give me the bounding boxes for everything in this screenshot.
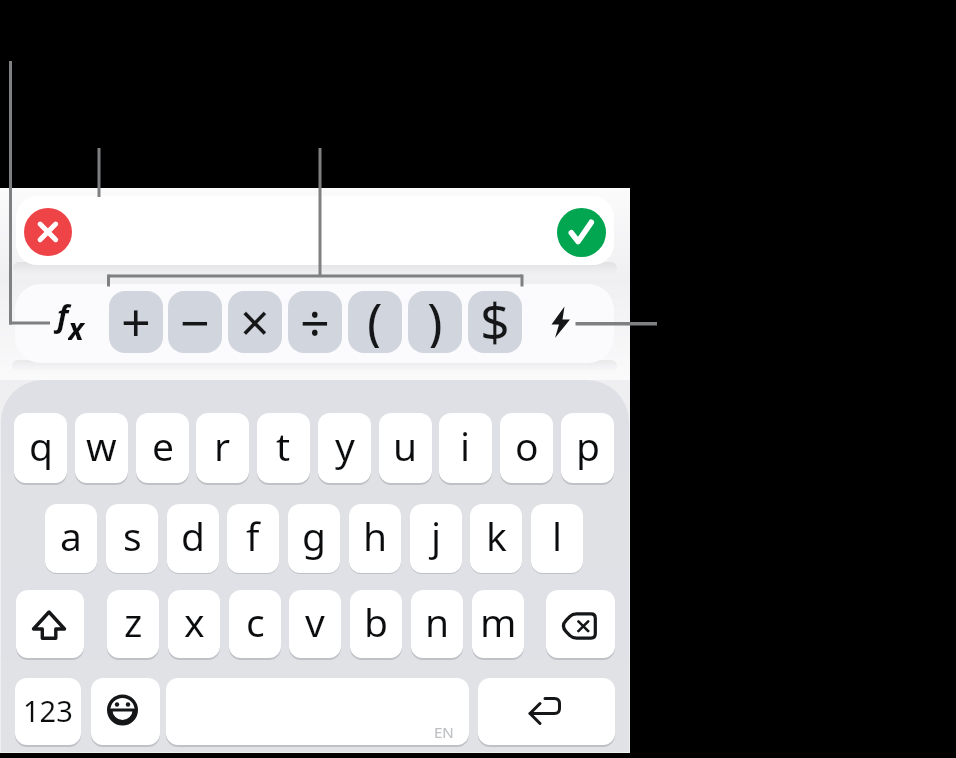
staticText: x [184, 595, 205, 648]
staticText: l [552, 509, 563, 562]
staticText: t [276, 419, 291, 472]
staticText: ) [427, 286, 443, 348]
staticText: q [29, 419, 53, 472]
staticText: j [431, 509, 442, 562]
staticText: b [364, 595, 388, 648]
staticText: v [305, 595, 325, 648]
staticText: + [121, 286, 151, 348]
staticText: ÷ [300, 286, 330, 348]
staticText: EN [434, 722, 454, 738]
staticText: f [246, 509, 260, 562]
staticText: u [393, 419, 418, 472]
staticText: y [335, 419, 355, 472]
staticText: k [486, 509, 507, 562]
staticText: × [240, 286, 270, 348]
staticText: w [86, 419, 117, 472]
staticText: s [123, 509, 142, 562]
staticText: x [68, 308, 85, 340]
staticText: c [246, 595, 265, 648]
staticText: o [515, 419, 539, 472]
staticText: a [60, 509, 82, 562]
staticText: 123 [23, 691, 73, 730]
staticText: − [180, 286, 210, 348]
staticText: i [460, 419, 471, 472]
staticText: e [152, 419, 174, 472]
staticText: h [363, 509, 388, 562]
staticText: d [181, 509, 205, 562]
staticText: r [214, 419, 231, 472]
staticText: n [425, 595, 450, 648]
staticText: f [57, 295, 69, 336]
staticText: $ [480, 286, 510, 348]
staticText: p [576, 419, 600, 472]
staticText: g [302, 509, 326, 562]
staticText: m [480, 595, 517, 648]
staticText: ( [367, 286, 383, 348]
staticText: z [124, 595, 143, 648]
